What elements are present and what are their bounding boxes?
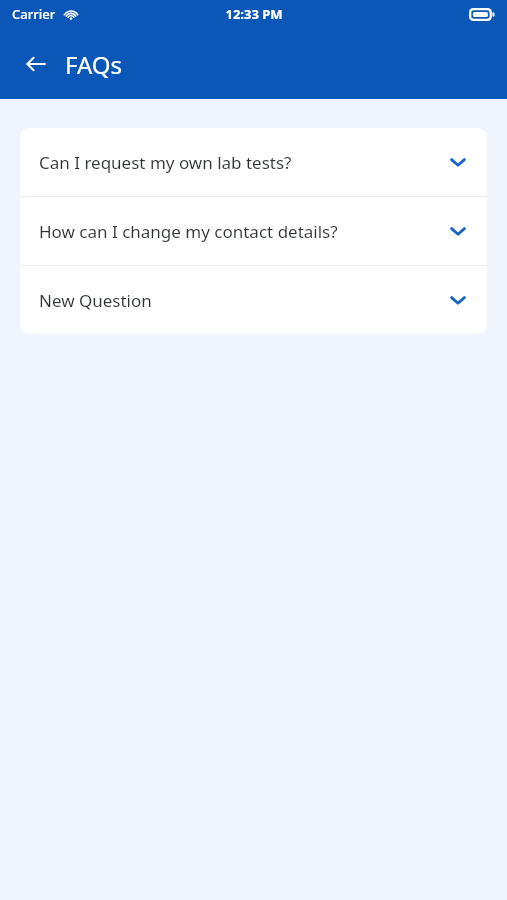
staticText: Can I request my own lab tests? xyxy=(39,151,438,174)
button[interactable]: Back xyxy=(14,42,58,86)
staticText: New Question xyxy=(39,289,438,312)
button[interactable]: Can I request my own lab tests? xyxy=(20,128,487,196)
staticText: FAQs xyxy=(65,48,123,81)
staticText: 12:33 PM xyxy=(225,5,283,23)
button[interactable]: New Question xyxy=(20,266,487,334)
button[interactable]: How can I change my contact details? xyxy=(20,197,487,265)
staticText: How can I change my contact details? xyxy=(39,220,438,243)
staticText: Carrier xyxy=(12,5,56,23)
